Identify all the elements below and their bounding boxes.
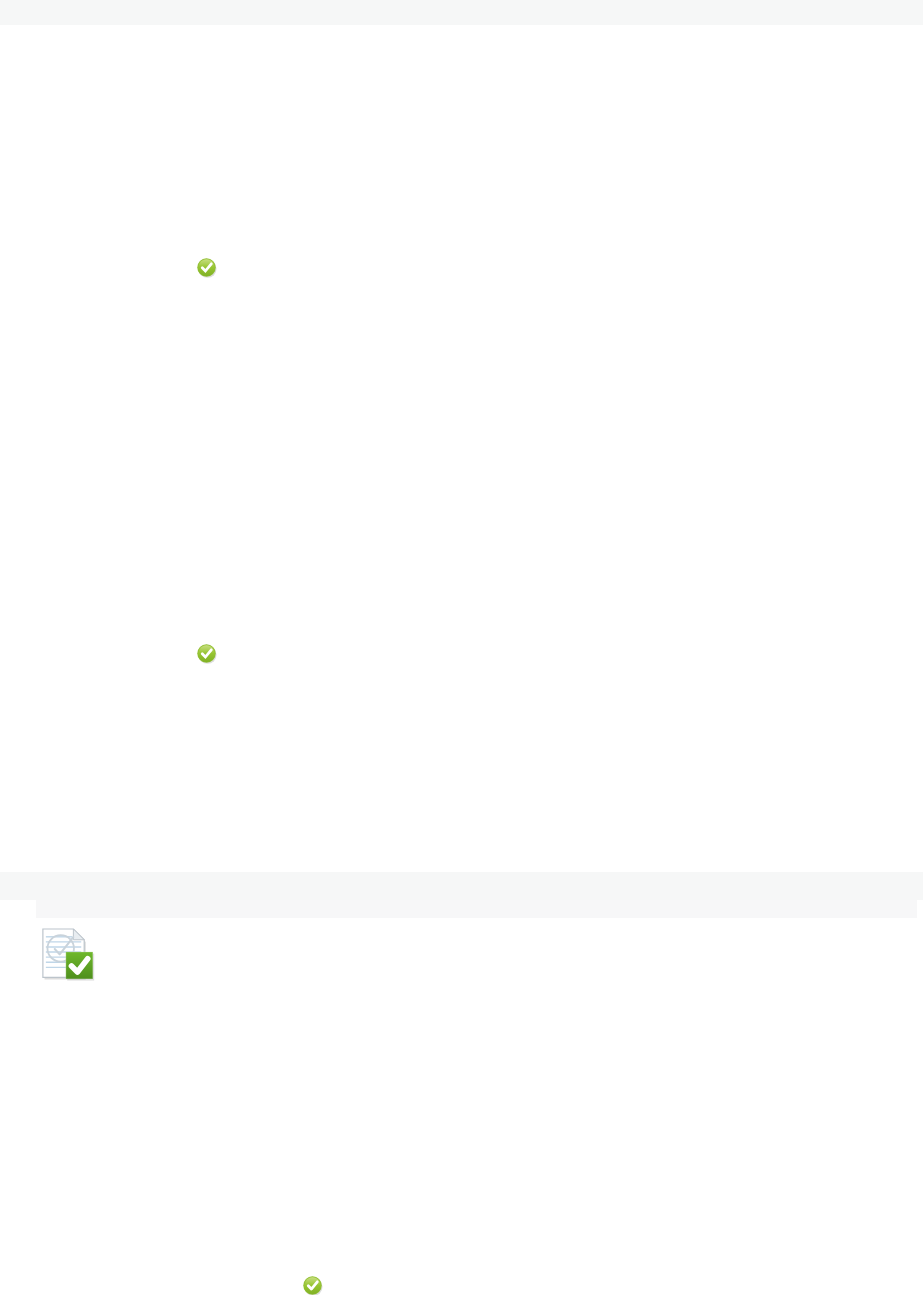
button[interactable]: Document approved — [41, 926, 95, 980]
button[interactable]: Completed — [302, 1275, 323, 1295]
button[interactable]: Completed — [196, 643, 217, 664]
button[interactable]: Completed — [196, 257, 217, 278]
